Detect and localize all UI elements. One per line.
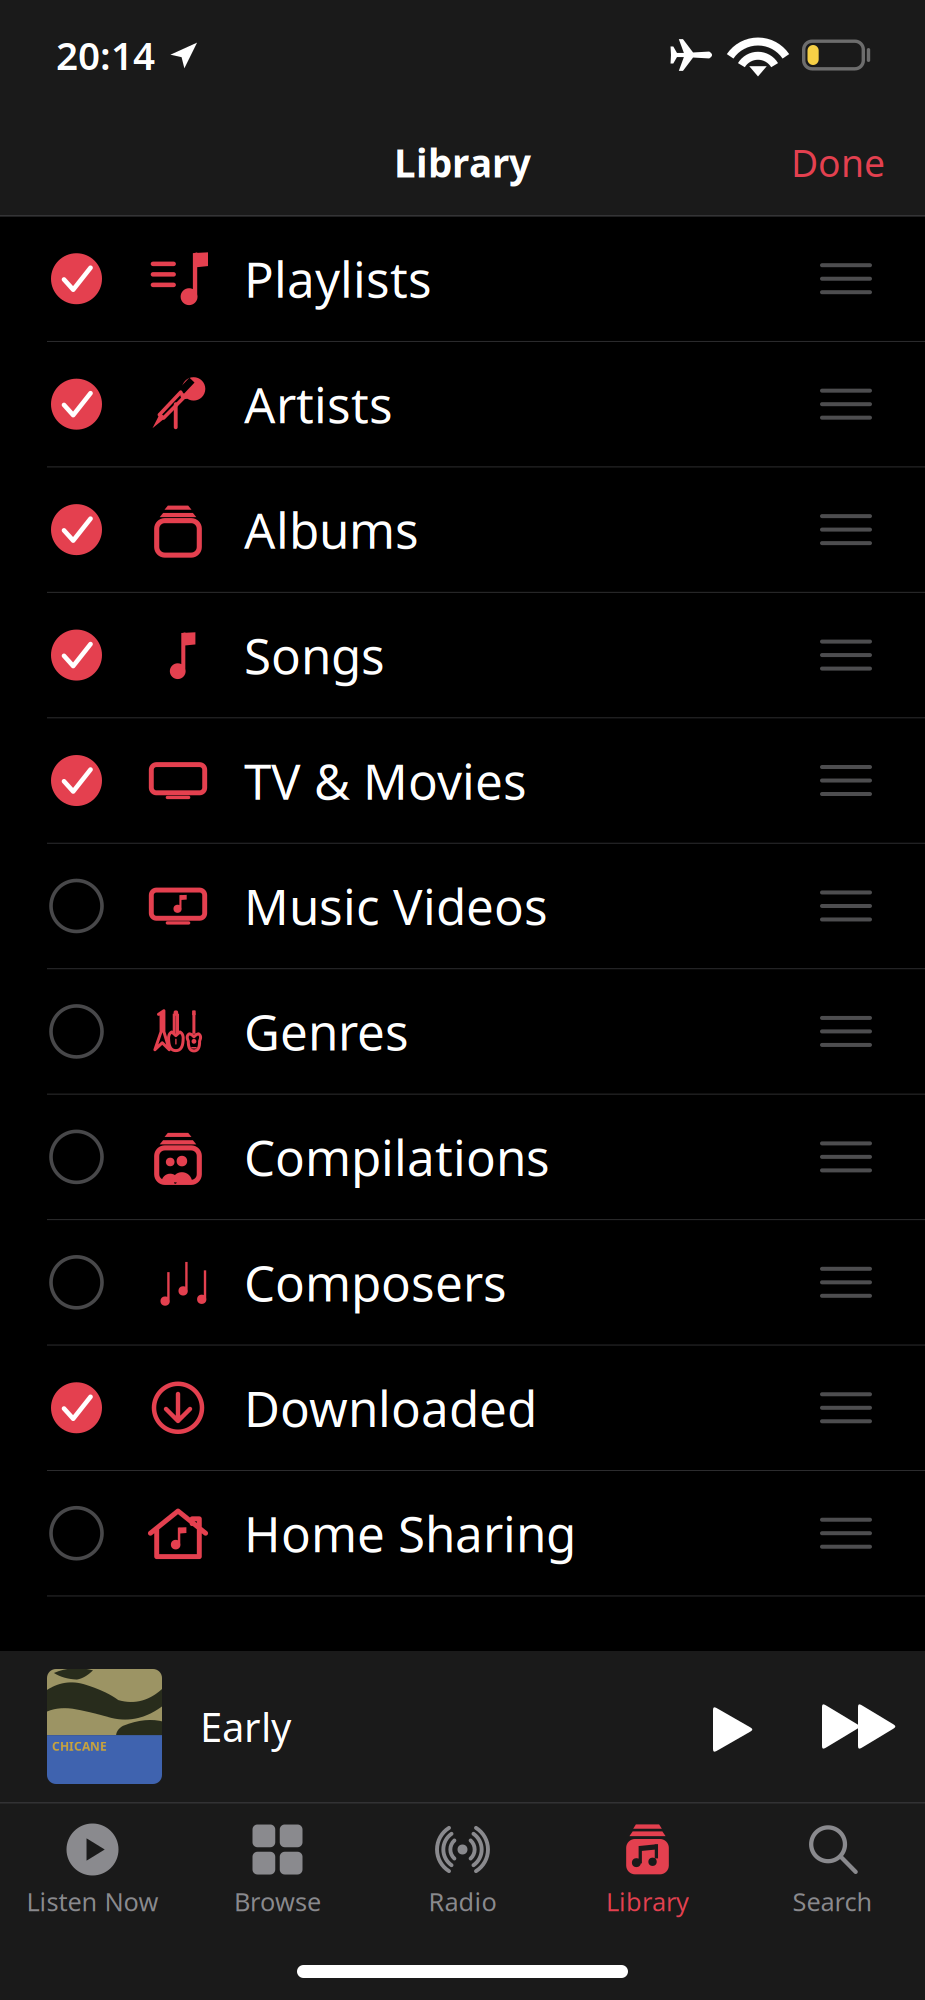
staticText: Library [394, 137, 531, 188]
staticText: TV & Movies [244, 748, 527, 813]
button[interactable]: Done [779, 124, 897, 201]
staticText: Albums [244, 497, 419, 562]
staticText: Music Videos [244, 873, 548, 939]
staticText: Listen Now [26, 1884, 158, 1918]
button[interactable]: Artists [0, 342, 925, 467]
staticText: Home Sharing [244, 1500, 576, 1566]
button[interactable]: Compilations [0, 1095, 925, 1220]
button[interactable]: Genres [0, 969, 925, 1095]
staticText: Library [606, 1884, 689, 1918]
button[interactable]: Home Sharing [0, 1471, 925, 1596]
button[interactable]: Library [555, 1821, 740, 1918]
button[interactable]: Browse [185, 1821, 370, 1918]
staticText: Artists [244, 371, 393, 437]
staticText: CHICANE [52, 1738, 107, 1754]
button[interactable]: Listen Now [0, 1821, 185, 1918]
button[interactable]: Play [683, 1673, 784, 1780]
staticText: Compilations [244, 1124, 550, 1190]
button[interactable]: Songs [0, 593, 925, 718]
button[interactable]: Music Videos [0, 844, 925, 969]
staticText: Browse [234, 1884, 321, 1918]
button[interactable]: Radio [370, 1821, 555, 1918]
button[interactable]: TV & Movies [0, 718, 925, 844]
button[interactable]: Search [740, 1821, 925, 1918]
staticText: Playlists [244, 246, 432, 311]
staticText: Search [792, 1884, 872, 1918]
staticText: 20:14 [56, 29, 155, 81]
button[interactable]: Next track [784, 1673, 907, 1780]
staticText: Composers [244, 1250, 507, 1315]
staticText: Done [791, 138, 885, 187]
staticText: Radio [428, 1884, 496, 1918]
button[interactable]: Composers [0, 1220, 925, 1346]
button[interactable]: Playlists [0, 216, 925, 342]
button[interactable]: Downloaded [0, 1346, 925, 1471]
button[interactable]: Albums [0, 467, 925, 593]
staticText: Early [200, 1700, 291, 1753]
staticText: Downloaded [244, 1375, 537, 1440]
staticText: Songs [244, 622, 385, 688]
staticText: Genres [244, 999, 409, 1064]
